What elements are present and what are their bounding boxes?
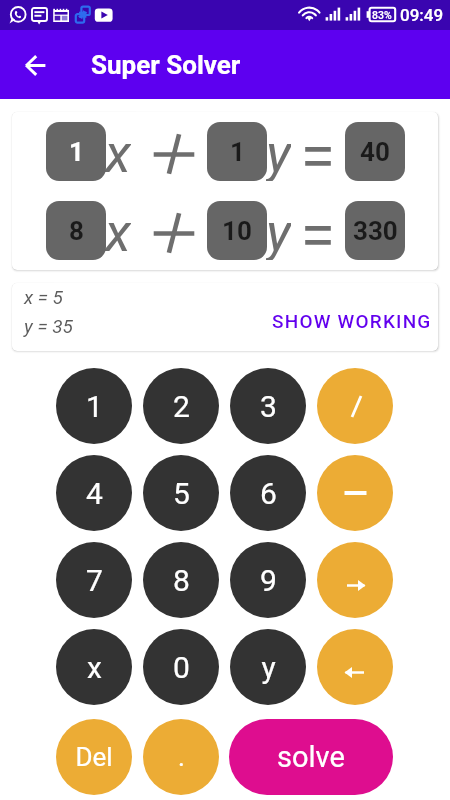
staticText: solve bbox=[277, 740, 345, 774]
staticText: 1 bbox=[69, 137, 84, 167]
button[interactable]: solve bbox=[229, 719, 393, 795]
staticText: x bbox=[105, 122, 131, 181]
staticText: y bbox=[266, 122, 291, 181]
staticText: 10 bbox=[222, 216, 252, 246]
staticText: x = 5 bbox=[24, 286, 63, 308]
button[interactable]: Divide bbox=[317, 368, 393, 444]
button[interactable]: 1 bbox=[46, 122, 106, 181]
staticText: 4 bbox=[86, 476, 103, 511]
button[interactable]: 40 bbox=[345, 122, 405, 181]
button[interactable]: 10 bbox=[207, 201, 267, 260]
staticText: x bbox=[87, 650, 102, 685]
button[interactable]: 8 bbox=[143, 542, 219, 618]
button[interactable]: 0 bbox=[143, 629, 219, 705]
button[interactable]: 2 bbox=[143, 368, 219, 444]
button[interactable]: 3 bbox=[230, 368, 306, 444]
staticText: 0 bbox=[173, 650, 190, 685]
staticText: 9 bbox=[260, 563, 277, 598]
staticText: y bbox=[261, 650, 276, 685]
staticText: . bbox=[178, 742, 185, 772]
button[interactable]: 330 bbox=[345, 201, 405, 260]
staticText: Super Solver bbox=[91, 50, 241, 80]
staticText: 5 bbox=[173, 476, 190, 511]
button[interactable]: 1 bbox=[207, 122, 267, 181]
button[interactable]: Del bbox=[56, 719, 132, 795]
staticText: 1 bbox=[230, 137, 245, 167]
button[interactable]: SHOW WORKING bbox=[272, 310, 438, 332]
staticText: 83% bbox=[372, 9, 392, 21]
button[interactable]: 6 bbox=[230, 455, 306, 531]
button[interactable]: . bbox=[143, 719, 219, 795]
staticText: 40 bbox=[360, 137, 390, 167]
staticText: 3 bbox=[260, 389, 277, 424]
staticText: SHOW WORKING bbox=[272, 310, 432, 332]
button[interactable]: Back bbox=[14, 44, 56, 86]
button[interactable]: y bbox=[230, 629, 306, 705]
staticText: y = 35 bbox=[24, 315, 73, 337]
staticText: Del bbox=[75, 742, 113, 772]
staticText: 8 bbox=[69, 216, 84, 246]
button[interactable]: 5 bbox=[143, 455, 219, 531]
button[interactable]: 1 bbox=[56, 368, 132, 444]
staticText: x bbox=[105, 201, 131, 260]
button[interactable]: 8 bbox=[46, 201, 106, 260]
button[interactable]: 4 bbox=[56, 455, 132, 531]
button[interactable]: Move right bbox=[317, 542, 393, 618]
button[interactable]: Minus bbox=[317, 455, 393, 531]
staticText: 1 bbox=[86, 389, 103, 424]
button[interactable]: Move left bbox=[317, 629, 393, 705]
staticText: 6 bbox=[260, 476, 277, 511]
button[interactable]: x bbox=[56, 629, 132, 705]
staticText: 7 bbox=[86, 563, 103, 598]
staticText: y bbox=[266, 201, 291, 260]
button[interactable]: 9 bbox=[230, 542, 306, 618]
button[interactable]: 7 bbox=[56, 542, 132, 618]
staticText: 09:49 bbox=[400, 5, 444, 25]
staticText: 8 bbox=[173, 563, 190, 598]
staticText: 2 bbox=[173, 389, 190, 424]
staticText: 330 bbox=[353, 216, 398, 246]
